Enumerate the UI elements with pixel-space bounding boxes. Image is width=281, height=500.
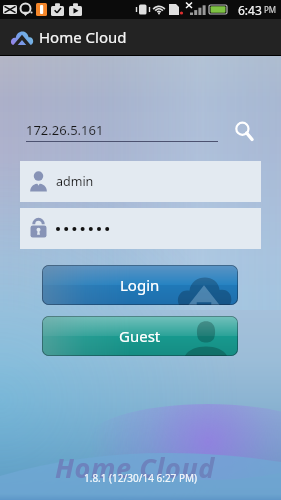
- staticText: admin: [56, 173, 94, 190]
- staticText: 172.26.5.161: [26, 121, 104, 139]
- button[interactable]: Guest: [42, 316, 238, 356]
- staticText: PM: [264, 4, 277, 15]
- other: Home Cloud: [11, 29, 33, 45]
- staticText: Guest: [119, 326, 161, 346]
- button[interactable]: [20, 208, 261, 249]
- staticText: 6:43: [238, 2, 262, 18]
- staticText: 1.8.1 (12/30/14 6:27 PM): [84, 471, 198, 485]
- button[interactable]: Login: [42, 265, 238, 305]
- button[interactable]: Search: [232, 119, 256, 143]
- staticText: Login: [120, 275, 160, 295]
- staticText: Home Cloud: [39, 27, 127, 47]
- staticText: Home Cloud: [55, 449, 215, 486]
- button[interactable]: admin: [20, 161, 261, 202]
- button[interactable]: 172.26.5.161: [26, 118, 218, 142]
